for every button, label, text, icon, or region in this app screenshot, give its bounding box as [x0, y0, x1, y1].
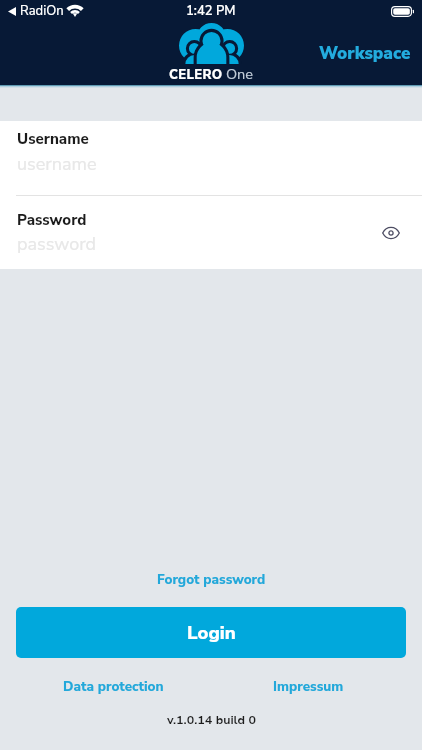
staticText: password [17, 232, 97, 257]
button[interactable]: Show password [375, 217, 407, 249]
staticText: Login [187, 620, 236, 645]
button[interactable]: Data protection [16, 677, 211, 695]
staticText: Password [17, 210, 87, 230]
other: Battery [391, 6, 414, 17]
staticText: Workspace [319, 42, 411, 65]
staticText: username [17, 152, 97, 177]
staticText: One [226, 64, 254, 84]
staticText: Impressum [273, 677, 344, 695]
button[interactable]: Forgot password [0, 570, 422, 588]
other: Wi-Fi [67, 5, 83, 17]
button[interactable]: Impressum [211, 677, 406, 695]
staticText: CELERO [169, 66, 223, 84]
staticText: v.1.0.14 build 0 [167, 711, 256, 728]
button[interactable]: Workspace [317, 38, 413, 69]
button[interactable]: Login [16, 607, 406, 658]
staticText: Forgot password [157, 570, 266, 588]
staticText: RadiOn [20, 2, 64, 20]
staticText: Data protection [63, 677, 164, 695]
staticText: Username [17, 129, 89, 149]
staticText: 1:42 PM [186, 2, 236, 20]
